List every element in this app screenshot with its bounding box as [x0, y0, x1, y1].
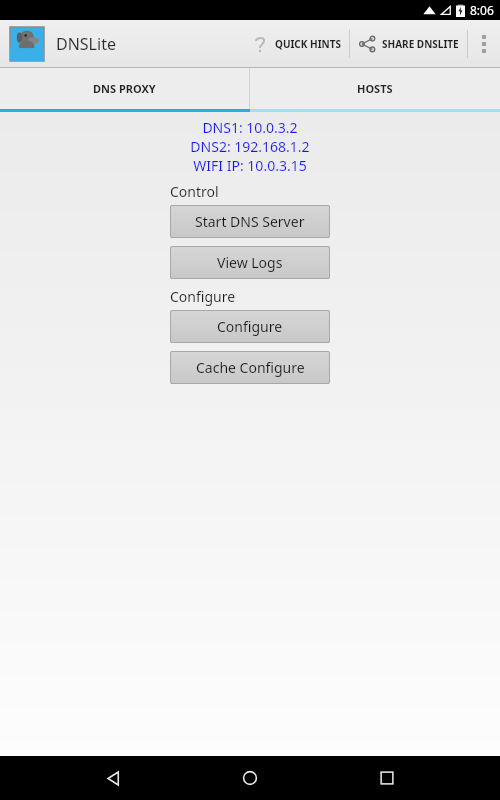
staticText: Start DNS Server [195, 212, 305, 231]
button[interactable]: Start DNS Server [170, 205, 330, 238]
staticText: HOSTS [357, 81, 393, 96]
staticText: DNSLite [56, 33, 116, 55]
staticText: Cache Configure [196, 358, 305, 377]
staticText: DNS PROXY [93, 81, 156, 96]
staticText: DNS1: 10.0.3.2 [0, 118, 500, 137]
button[interactable]: HOSTS [250, 68, 500, 109]
button[interactable]: DNS PROXY [0, 68, 249, 109]
staticText: SHARE DNSLITE [382, 37, 459, 51]
staticText: 8:06 [470, 2, 494, 18]
staticText: WIFI IP: 10.0.3.15 [0, 156, 500, 175]
staticText: DNS2: 192.168.1.2 [0, 137, 500, 156]
button[interactable]: View Logs [170, 246, 330, 279]
button[interactable]: QUICK HINTS [243, 20, 349, 68]
button[interactable]: SHARE DNSLITE [350, 20, 467, 68]
staticText: View Logs [217, 253, 283, 272]
staticText: Configure [217, 317, 283, 336]
staticText: QUICK HINTS [275, 37, 341, 51]
button[interactable]: Configure [170, 310, 330, 343]
button[interactable]: Recent apps [363, 756, 411, 800]
staticText: Configure [170, 287, 236, 306]
button[interactable]: Back [89, 756, 137, 800]
button[interactable]: More options [468, 20, 500, 68]
button[interactable]: Home [226, 756, 274, 800]
button[interactable]: Cache Configure [170, 351, 330, 384]
staticText: Control [170, 182, 219, 201]
